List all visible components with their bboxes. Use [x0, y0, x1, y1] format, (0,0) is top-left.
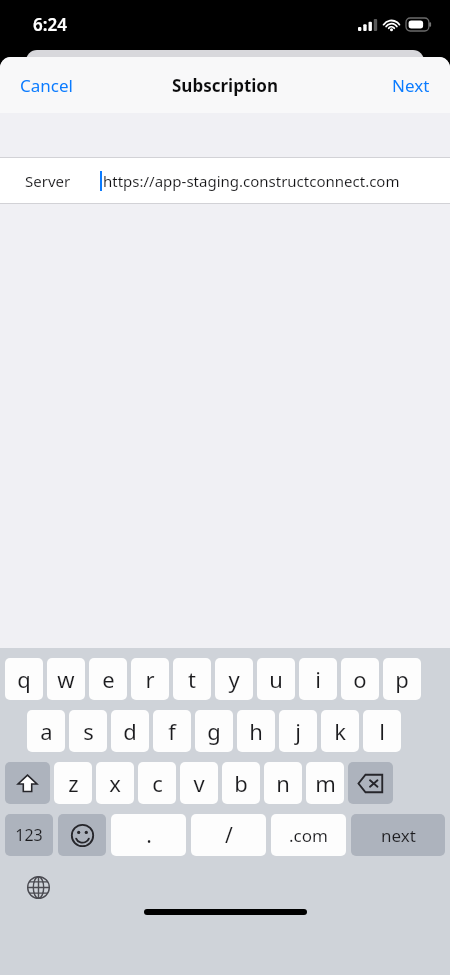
staticText: 123 [15, 824, 43, 846]
button[interactable]: 123 [5, 814, 53, 856]
button[interactable]: Emoji [58, 814, 106, 856]
button[interactable]: v [180, 762, 218, 804]
button[interactable]: r [131, 658, 169, 700]
staticText: g [207, 716, 221, 746]
button[interactable]: o [341, 658, 379, 700]
button[interactable]: s [69, 710, 107, 752]
staticText: q [17, 664, 31, 694]
button[interactable]: l [363, 710, 401, 752]
button[interactable]: j [279, 710, 317, 752]
button[interactable]: k [321, 710, 359, 752]
button[interactable]: g [195, 710, 233, 752]
staticText: r [145, 664, 155, 694]
button[interactable]: c [138, 762, 176, 804]
button[interactable]: q [5, 658, 43, 700]
button[interactable]: d [111, 710, 149, 752]
staticText: v [193, 768, 205, 798]
staticText: h [249, 716, 263, 746]
button[interactable]: z [54, 762, 92, 804]
button[interactable]: Backspace [348, 762, 393, 804]
staticText: u [269, 664, 283, 694]
button[interactable]: x [96, 762, 134, 804]
button[interactable]: . [111, 814, 186, 856]
staticText: b [234, 768, 248, 798]
button[interactable]: p [383, 658, 421, 700]
button[interactable]: m [306, 762, 344, 804]
staticText: https://app-staging.constructconnect.com [103, 171, 400, 191]
staticText: i [315, 664, 321, 694]
button[interactable]: Server [0, 158, 450, 203]
staticText: y [228, 664, 240, 694]
staticText: Server [25, 171, 71, 191]
button[interactable]: Cancel [0, 64, 93, 107]
staticText: next [381, 824, 416, 847]
staticText: .com [289, 824, 328, 847]
staticText: j [295, 716, 301, 746]
button[interactable]: / [191, 814, 266, 856]
staticText: . [146, 821, 152, 850]
button[interactable]: w [47, 658, 85, 700]
button[interactable]: f [153, 710, 191, 752]
button[interactable]: a [27, 710, 65, 752]
button[interactable]: Next [372, 64, 450, 107]
staticText: n [276, 768, 290, 798]
staticText: l [379, 716, 385, 746]
staticText: o [353, 664, 367, 694]
staticText: t [188, 664, 196, 694]
staticText: p [395, 664, 409, 694]
button[interactable]: e [89, 658, 127, 700]
staticText: s [83, 716, 94, 746]
staticText: m [315, 768, 336, 798]
button[interactable]: h [237, 710, 275, 752]
button[interactable]: i [299, 658, 337, 700]
staticText: / [225, 821, 233, 850]
staticText: k [334, 716, 346, 746]
staticText: Cancel [20, 74, 73, 97]
button[interactable]: .com [271, 814, 346, 856]
staticText: c [152, 768, 163, 798]
staticText: a [40, 716, 53, 746]
button[interactable]: Shift [5, 762, 50, 804]
button[interactable]: Change keyboard language [22, 871, 54, 903]
button[interactable]: u [257, 658, 295, 700]
staticText: f [168, 716, 176, 746]
staticText: w [57, 664, 75, 694]
staticText: Subscription [172, 74, 279, 97]
staticText: Next [392, 74, 430, 97]
staticText: d [123, 716, 137, 746]
staticText: z [68, 768, 79, 798]
staticText: e [102, 664, 115, 694]
staticText: 6:24 [33, 13, 67, 36]
button[interactable]: b [222, 762, 260, 804]
button[interactable]: next [351, 814, 445, 856]
button[interactable]: t [173, 658, 211, 700]
staticText: x [109, 768, 121, 798]
button[interactable]: y [215, 658, 253, 700]
button[interactable]: n [264, 762, 302, 804]
